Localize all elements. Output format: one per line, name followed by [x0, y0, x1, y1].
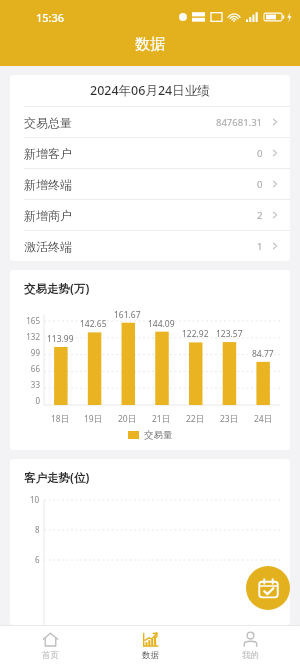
staticText: 22日	[186, 413, 205, 425]
button[interactable]: 新增商户	[10, 200, 290, 230]
button[interactable]: 我的	[200, 625, 300, 667]
button[interactable]: 首页	[0, 625, 100, 667]
staticText: 我的	[242, 650, 259, 661]
staticText: 交易走势(万)	[24, 281, 90, 297]
staticText: 首页	[42, 650, 59, 661]
staticText: 123.57	[216, 328, 243, 340]
staticText: 19日	[84, 413, 103, 425]
staticText: 18日	[51, 413, 70, 425]
staticText: 99	[30, 347, 40, 358]
staticText: 847681.31	[216, 116, 263, 129]
staticText: 新增客户	[24, 146, 72, 161]
staticText: 84.77	[252, 348, 274, 360]
button[interactable]: 新增客户	[10, 138, 290, 168]
staticText: 21日	[152, 413, 171, 425]
staticText: 1	[257, 240, 263, 253]
staticText: 新增终端	[24, 177, 72, 192]
staticText: 15:36	[36, 10, 65, 25]
staticText: 数据	[135, 35, 165, 54]
staticText: 0	[257, 147, 263, 160]
staticText: 132	[26, 331, 40, 342]
staticText: 0	[257, 178, 263, 191]
staticText: 交易总量	[24, 115, 72, 130]
staticText: 24日	[254, 413, 273, 425]
staticText: 10	[30, 494, 40, 505]
staticText: 2024年06月24日业绩	[90, 82, 210, 99]
staticText: 33	[30, 379, 40, 390]
staticText: 激活终端	[24, 239, 72, 254]
staticText: 66	[30, 363, 40, 374]
button[interactable]: 数据	[100, 625, 200, 667]
staticText: 23日	[220, 413, 239, 425]
button[interactable]: 新增终端	[10, 169, 290, 199]
staticText: 113.99	[47, 333, 74, 345]
staticText: 6	[35, 554, 40, 565]
staticText: 161.67	[114, 309, 141, 321]
button[interactable]: 选择日期	[246, 566, 290, 610]
staticText: 165	[26, 315, 40, 326]
staticText: 142.65	[80, 318, 107, 330]
button[interactable]: 激活终端	[10, 231, 290, 261]
staticText: 144.09	[148, 318, 175, 330]
staticText: 0	[35, 395, 40, 406]
staticText: 2	[257, 209, 263, 222]
staticText: 8	[35, 524, 40, 535]
staticText: 数据	[142, 650, 159, 661]
staticText: 交易量	[144, 429, 173, 441]
staticText: 客户走势(位)	[24, 470, 90, 486]
staticText: 新增商户	[24, 208, 72, 223]
staticText: 20日	[118, 413, 137, 425]
staticText: 122.92	[182, 328, 209, 340]
button[interactable]: 交易总量	[10, 107, 290, 137]
